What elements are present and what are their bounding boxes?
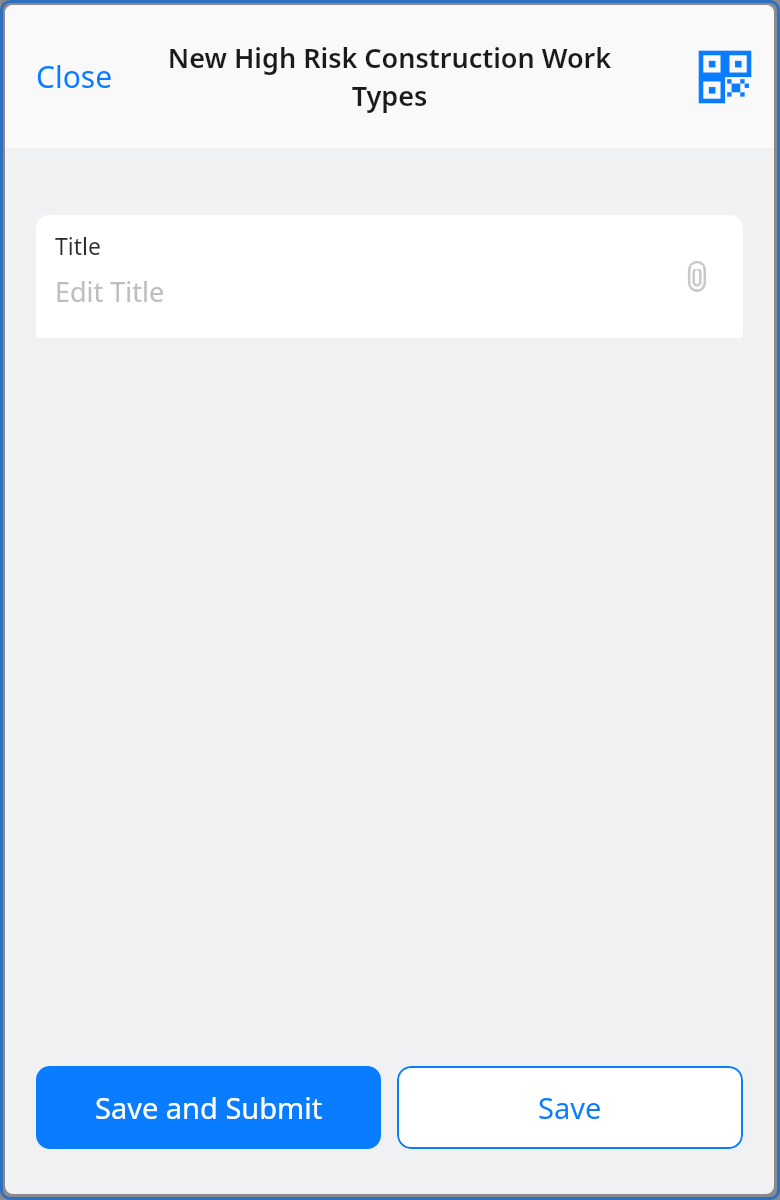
- staticText: Title: [55, 230, 101, 261]
- button[interactable]: Scan QR code: [694, 46, 756, 108]
- staticText: Save and Submit: [95, 1088, 323, 1127]
- button[interactable]: Save: [397, 1066, 743, 1149]
- button[interactable]: Save and Submit: [36, 1066, 381, 1149]
- staticText: Edit Title: [55, 273, 165, 310]
- button[interactable]: Close: [25, 48, 124, 105]
- staticText: Save: [538, 1088, 602, 1127]
- staticText: Close: [36, 56, 113, 97]
- button[interactable]: Title: [36, 215, 743, 338]
- staticText: New High Risk Construction Work Types: [145, 39, 634, 114]
- button[interactable]: Attach file: [676, 256, 718, 298]
